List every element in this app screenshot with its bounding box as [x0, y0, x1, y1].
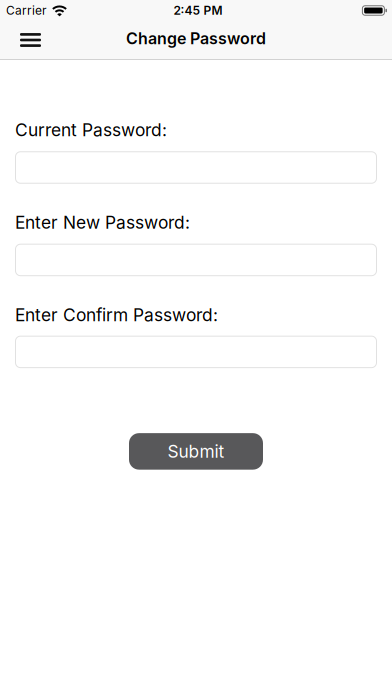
staticText: Carrier [6, 3, 47, 18]
staticText: Current Password: [15, 120, 167, 140]
staticText: 2:45 PM [173, 3, 222, 18]
button[interactable]: Submit [129, 433, 263, 470]
staticText: Submit [167, 441, 224, 462]
staticText: Enter New Password: [15, 212, 190, 233]
staticText: Enter Confirm Password: [15, 305, 218, 325]
staticText: Change Password [126, 29, 266, 48]
button[interactable]: Menu [0, 33, 41, 47]
